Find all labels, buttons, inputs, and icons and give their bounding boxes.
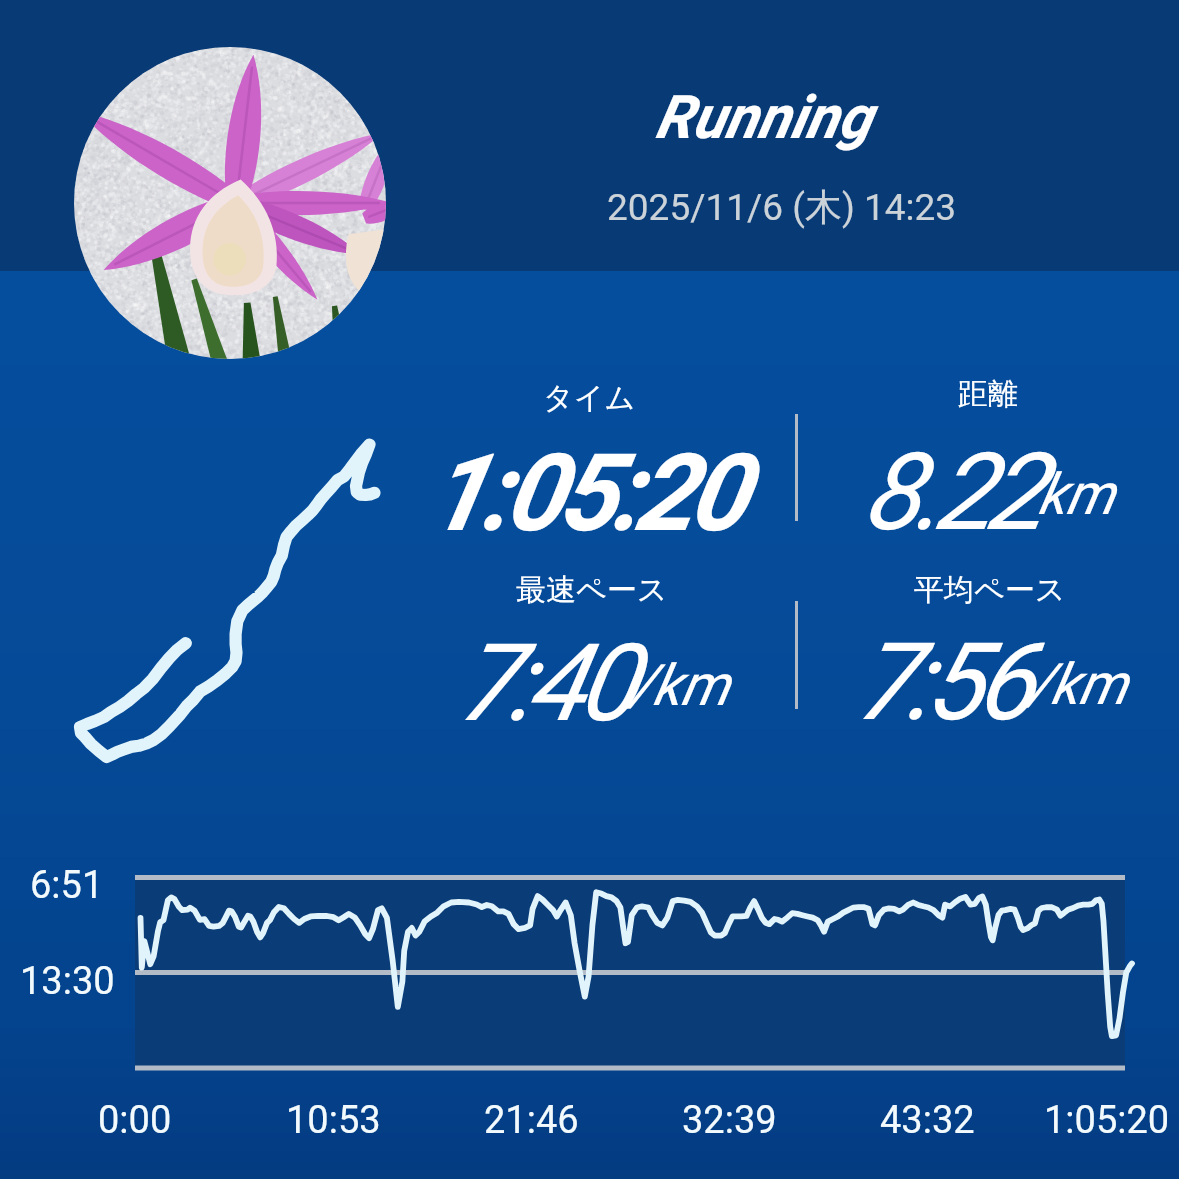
staticText: 7:56 [855,620,1028,745]
staticText: /km [1028,651,1128,718]
button[interactable]: 最速ペース [392,571,792,615]
staticText: 0:00 [98,1098,172,1143]
staticText: 43:32 [880,1098,975,1143]
staticText: 7:40 [457,621,630,746]
staticText: 2025/11/6 (木) 14:23 [607,184,957,231]
staticText: 平均ペース [914,571,1066,609]
button[interactable]: Running [395,82,1131,162]
staticText: 距離 [958,375,1018,413]
button[interactable]: Profile photo [74,47,386,359]
staticText: 6:51 [30,863,104,908]
staticText: 1:05:20 [427,431,742,556]
button[interactable]: 距離 [788,375,1179,419]
staticText: 32:39 [682,1098,777,1143]
staticText: 13:30 [20,959,115,1004]
button[interactable]: 平均ペース [790,571,1179,615]
staticText: 10:53 [286,1098,381,1143]
staticText: 1:05:20 [1044,1098,1170,1143]
staticText: Running [655,82,872,152]
staticText: 21:46 [484,1098,579,1143]
staticText: 8.22 [863,430,1038,555]
button[interactable]: タイム [389,379,789,423]
staticText: /km [630,652,730,719]
staticText: km [1038,461,1115,528]
staticText: タイム [543,379,636,417]
staticText: 最速ペース [516,571,668,609]
